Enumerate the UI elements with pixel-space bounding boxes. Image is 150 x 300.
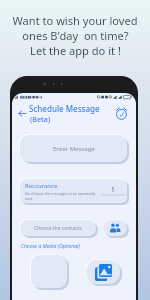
button[interactable]: Choose contacts — [103, 220, 127, 236]
staticText: Choose the contacts — [34, 225, 82, 232]
staticText: 1 — [111, 185, 115, 194]
staticText: No of times the messages to be repeatedl… — [25, 191, 96, 201]
staticText: Let the app do it ! — [30, 43, 121, 58]
button[interactable]: Set alarm time — [114, 106, 129, 121]
staticText: (Beta) — [30, 114, 51, 124]
staticText: Schedule Message — [29, 103, 100, 114]
staticText: Want to wish your loved — [12, 13, 138, 28]
staticText: ones B'day on time? — [22, 28, 129, 43]
staticText: Choose a Media (Optional) — [21, 243, 80, 250]
button[interactable]: Back — [17, 108, 28, 119]
staticText: Reccurance — [25, 182, 58, 190]
staticText: Enter Message — [53, 145, 95, 153]
button[interactable]: Choose media — [86, 260, 120, 284]
